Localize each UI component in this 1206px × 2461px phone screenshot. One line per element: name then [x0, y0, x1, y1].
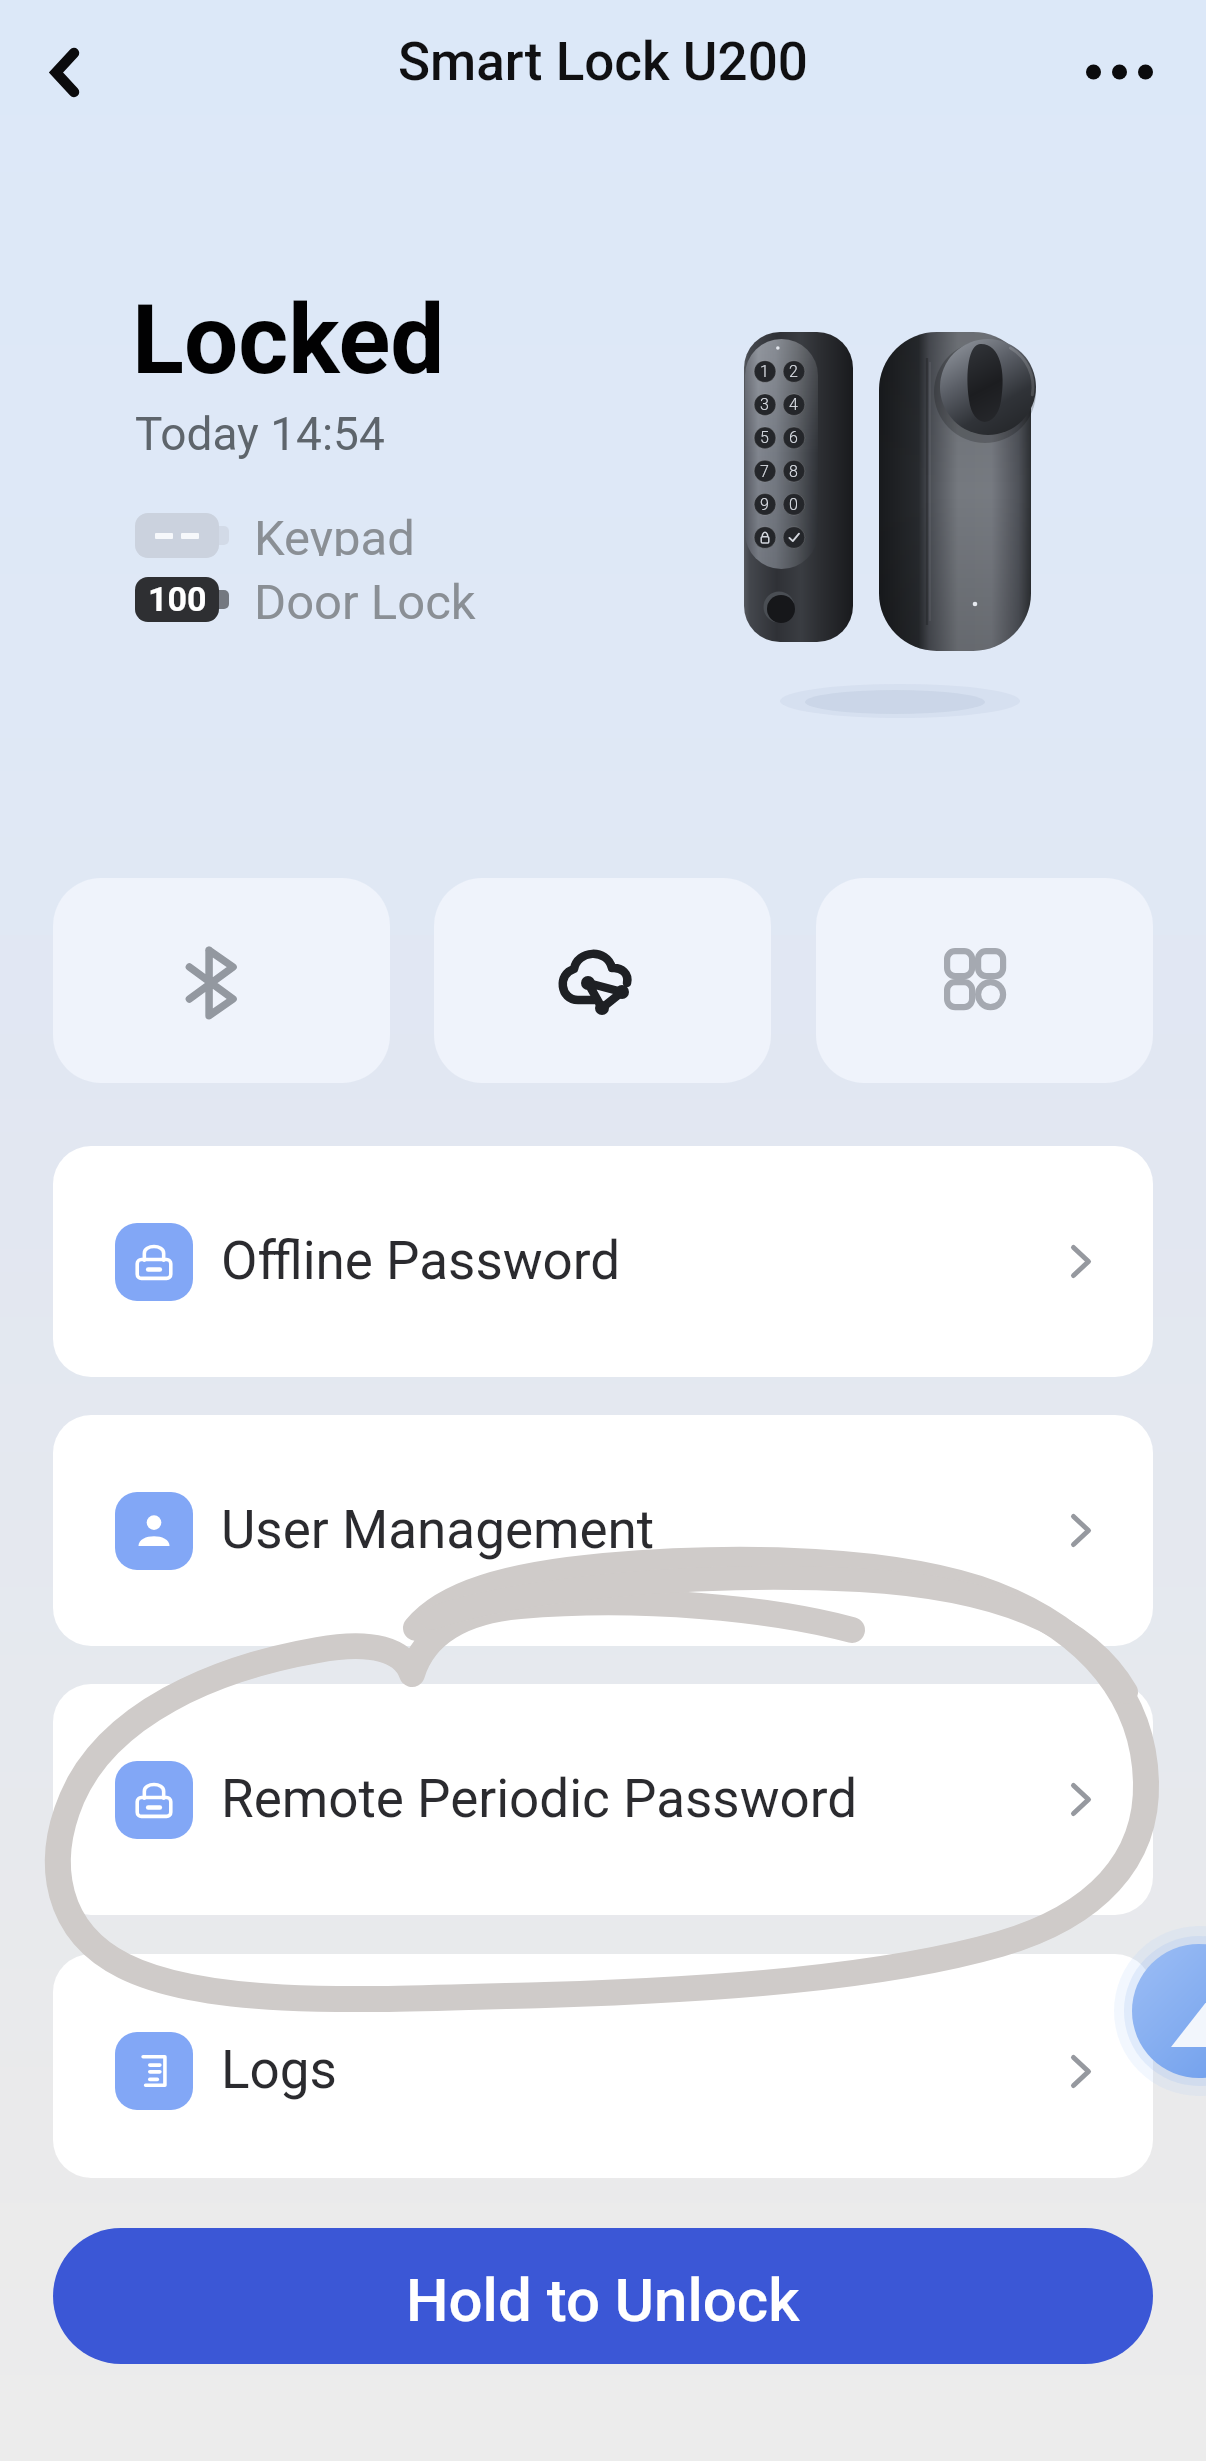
staticText: 100: [148, 579, 207, 619]
button[interactable]: More options: [1073, 26, 1165, 118]
staticText: Today 14:54: [135, 407, 385, 461]
staticText: 6: [789, 428, 798, 447]
staticText: Smart Lock U200: [398, 31, 808, 93]
staticText: 8: [789, 462, 798, 481]
button[interactable]: Bluetooth: [53, 878, 390, 1083]
staticText: Offline Password: [221, 1230, 621, 1292]
staticText: Remote Periodic Password: [221, 1768, 858, 1830]
staticText: 1: [760, 362, 769, 381]
staticText: Hold to Unlock: [406, 2265, 800, 2335]
button[interactable]: Back: [19, 26, 111, 118]
staticText: 5: [760, 428, 769, 447]
staticText: 4: [789, 395, 798, 414]
staticText: 0: [789, 495, 798, 514]
button[interactable]: Offline Password: [53, 1146, 1153, 1377]
button[interactable]: More features: [816, 878, 1153, 1083]
staticText: 9: [760, 495, 769, 514]
staticText: Logs: [221, 2039, 337, 2101]
button[interactable]: Hold to Unlock: [53, 2228, 1153, 2364]
button[interactable]: Cloud connection: [434, 878, 771, 1083]
staticText: Locked: [132, 284, 445, 397]
staticText: Door Lock: [254, 574, 476, 620]
staticText: User Management: [221, 1499, 655, 1561]
staticText: Keypad: [254, 510, 415, 556]
staticText: 2: [789, 362, 798, 381]
staticText: 7: [760, 462, 769, 481]
button[interactable]: Logs: [53, 1954, 1153, 2178]
button[interactable]: User Management: [53, 1415, 1153, 1646]
button[interactable]: Remote Periodic Password: [53, 1684, 1153, 1915]
staticText: 3: [760, 395, 769, 414]
